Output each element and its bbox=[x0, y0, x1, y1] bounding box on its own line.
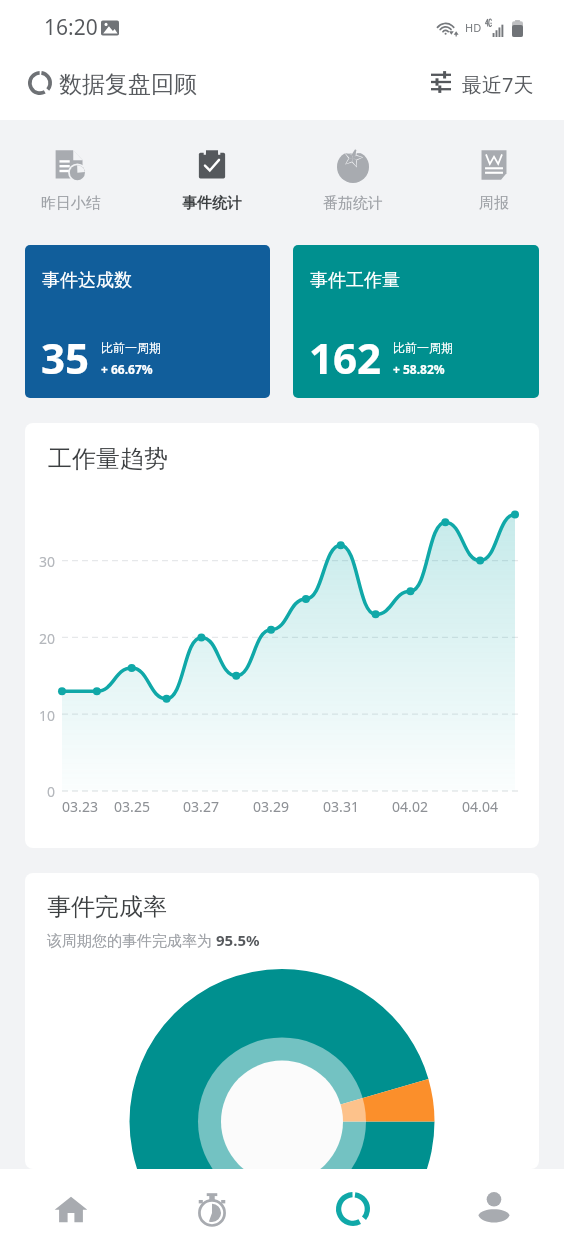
button[interactable]: 番茄统计 bbox=[282, 137, 423, 213]
staticText: 事件工作量 bbox=[310, 269, 400, 292]
staticText: 番茄统计 bbox=[323, 194, 383, 213]
staticText: 03.29 bbox=[241, 797, 301, 816]
staticText: 35 bbox=[41, 329, 90, 386]
staticText: 20 bbox=[25, 629, 55, 648]
button[interactable]: Home bbox=[0, 1169, 141, 1248]
staticText: 数据复盘回顾 bbox=[59, 70, 197, 99]
staticText: 工作量趋势 bbox=[48, 444, 168, 474]
button[interactable]: Timer bbox=[141, 1169, 282, 1248]
button[interactable]: 事件达成数 bbox=[25, 245, 270, 398]
staticText: + 58.82% bbox=[393, 361, 445, 377]
staticText: HD bbox=[465, 20, 482, 35]
staticText: 16:20 bbox=[44, 13, 98, 42]
staticText: 周报 bbox=[479, 194, 509, 213]
button[interactable]: 事件工作量 bbox=[293, 245, 539, 398]
button[interactable]: 事件统计 bbox=[141, 137, 282, 213]
staticText: 该周期您的事件完成率为 bbox=[47, 930, 216, 950]
staticText: 30 bbox=[25, 552, 55, 571]
staticText: 03.25 bbox=[102, 797, 162, 816]
staticText: 0 bbox=[25, 782, 55, 801]
staticText: + 66.67% bbox=[101, 361, 153, 377]
staticText: 162 bbox=[309, 329, 382, 386]
staticText: 03.31 bbox=[311, 797, 371, 816]
staticText: 10 bbox=[25, 706, 55, 725]
button[interactable]: 最近7天 bbox=[431, 74, 534, 101]
staticText: 比前一周期 bbox=[101, 340, 161, 355]
button[interactable]: 昨日小结 bbox=[0, 137, 141, 213]
staticText: 事件统计 bbox=[182, 194, 242, 213]
staticText: 事件达成数 bbox=[42, 269, 132, 292]
staticText: 昨日小结 bbox=[41, 194, 101, 213]
button[interactable]: 周报 bbox=[423, 137, 564, 213]
button[interactable]: Profile bbox=[423, 1169, 564, 1248]
staticText: 03.27 bbox=[171, 797, 231, 816]
button[interactable]: Statistics bbox=[282, 1169, 423, 1248]
staticText: 04.02 bbox=[380, 797, 440, 816]
staticText: 04.04 bbox=[450, 797, 510, 816]
staticText: 最近7天 bbox=[462, 71, 534, 98]
staticText: 事件完成率 bbox=[47, 892, 167, 922]
staticText: 比前一周期 bbox=[393, 340, 453, 355]
staticText: 95.5% bbox=[216, 930, 260, 950]
staticText: 03.23 bbox=[50, 797, 110, 816]
